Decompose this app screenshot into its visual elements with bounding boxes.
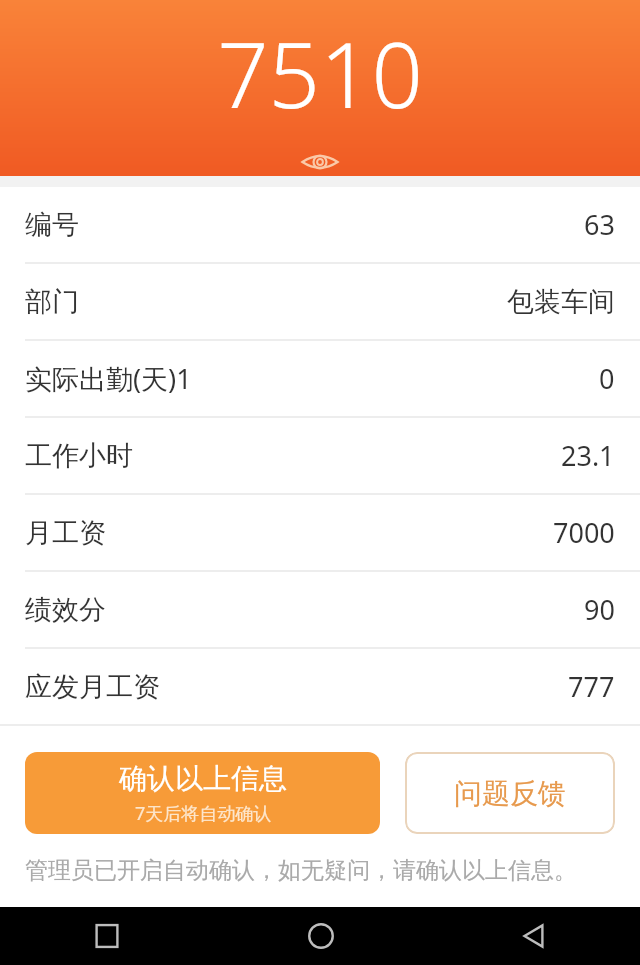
staticText: 23.1 [561, 437, 615, 474]
staticText: 90 [584, 591, 615, 628]
button[interactable]: 绩效分 [0, 572, 640, 647]
staticText: 工作小时 [25, 439, 133, 473]
staticText: 问题反馈 [454, 776, 566, 811]
staticText: 管理员已开启自动确认，如无疑问，请确认以上信息。 [25, 856, 577, 885]
button[interactable]: Home [214, 907, 427, 965]
button[interactable]: Back [427, 907, 640, 965]
button[interactable]: 编号 [0, 187, 640, 262]
button[interactable]: 应发月工资 [0, 649, 640, 724]
staticText: 编号 [25, 208, 79, 242]
button[interactable]: Recent apps [0, 907, 214, 965]
staticText: 777 [568, 668, 615, 705]
staticText: 7000 [553, 514, 615, 551]
staticText: 7510 [217, 12, 423, 135]
button[interactable]: 确认以上信息 [25, 752, 380, 834]
staticText: 7天后将自动确认 [135, 801, 272, 826]
staticText: 确认以上信息 [119, 761, 287, 796]
staticText: 应发月工资 [25, 670, 160, 704]
staticText: 部门 [25, 285, 79, 319]
staticText: 实际出勤(天)1 [25, 360, 192, 397]
staticText: 0 [599, 360, 615, 397]
staticText: 绩效分 [25, 593, 106, 627]
button[interactable]: 月工资 [0, 495, 640, 570]
button[interactable]: 实际出勤(天)1 [0, 341, 640, 416]
button[interactable]: 部门 [0, 264, 640, 339]
staticText: 63 [584, 206, 615, 243]
staticText: 月工资 [25, 516, 106, 550]
staticText: 包装车间 [507, 285, 615, 319]
button[interactable]: 工作小时 [0, 418, 640, 493]
button[interactable]: 问题反馈 [405, 752, 615, 834]
button[interactable]: Toggle visibility [292, 147, 348, 176]
